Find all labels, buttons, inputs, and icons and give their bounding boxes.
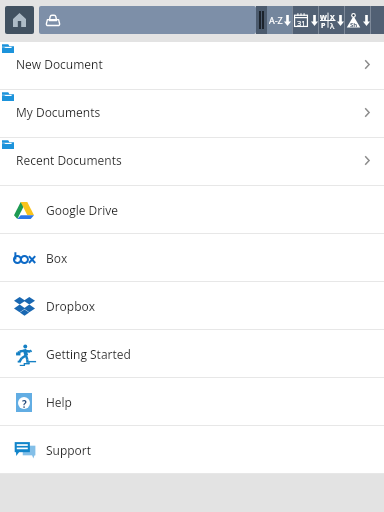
staticText: X [330,13,335,23]
staticText: W [320,13,327,23]
staticText: Help [46,394,72,410]
staticText: My Documents [16,104,101,120]
button[interactable]: Drag handle [256,6,267,34]
button[interactable]: Home [5,6,34,34]
staticText: 31 [297,18,306,28]
button[interactable]: Sort by date [293,6,318,34]
staticText: ? [22,397,27,409]
button[interactable]: Sort by name [267,6,292,34]
button[interactable]: Box [0,234,384,282]
button[interactable]: New Document [0,42,384,90]
staticText: Box [46,250,68,266]
button[interactable]: Dropbox [0,282,384,330]
button[interactable] [39,6,256,34]
button[interactable]: Recent Documents [0,138,384,186]
staticText: Support [46,442,92,458]
button[interactable]: ? [0,378,384,426]
staticText: A-Z [269,14,283,26]
button[interactable]: Google Drive [0,186,384,234]
staticText: Sh [350,21,358,29]
button[interactable]: Getting Started [0,330,384,378]
button[interactable]: My Documents [0,90,384,138]
staticText: λ [330,20,335,31]
staticText: Google Drive [46,202,118,218]
button[interactable]: Support [0,426,384,474]
button[interactable]: Sort by size [345,6,370,34]
staticText: Getting Started [46,346,131,362]
button[interactable]: Sort by type [319,6,344,34]
staticText: New Document [16,56,103,72]
staticText: P [321,21,326,31]
staticText: Dropbox [46,298,96,314]
staticText: Recent Documents [16,152,122,168]
